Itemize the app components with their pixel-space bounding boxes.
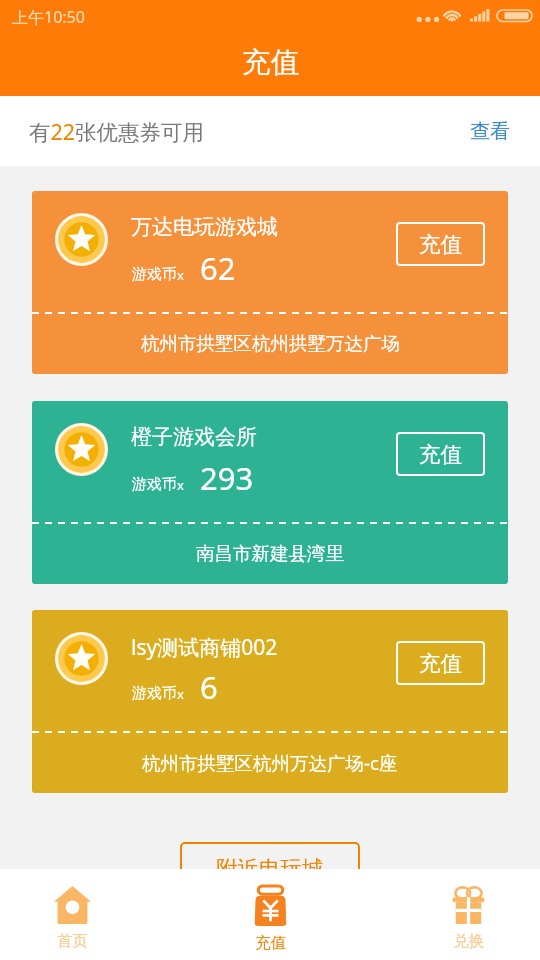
button[interactable]: 橙子游戏会所 — [32, 401, 508, 584]
button[interactable]: 有22张优惠券可用 — [0, 96, 540, 166]
staticText: lsy测试商铺002 — [131, 633, 278, 662]
staticText: 62 — [200, 247, 236, 289]
button[interactable]: Recharge — [225, 869, 315, 960]
staticText: 充值 — [242, 45, 299, 81]
staticText: 首页 — [57, 931, 88, 951]
staticText: 游戏币 — [132, 684, 177, 703]
staticText: x — [177, 266, 184, 284]
staticText: 南昌市新建县湾里 — [196, 542, 344, 565]
staticText: x — [177, 476, 184, 494]
button[interactable]: 充值 — [396, 641, 485, 685]
staticText: 充值 — [419, 650, 462, 677]
staticText: 充值 — [255, 933, 286, 953]
staticText: 上午10:50 — [12, 6, 85, 28]
other: Recharge — [254, 886, 287, 926]
other: Home — [54, 886, 91, 924]
staticText: 有22张优惠券可用 — [29, 117, 205, 146]
staticText: x — [177, 685, 184, 703]
button[interactable]: 充值 — [396, 432, 485, 476]
staticText: 兑换 — [453, 931, 484, 951]
staticText: 查看 — [470, 119, 510, 144]
staticText: 充值 — [419, 441, 462, 468]
staticText: 万达电玩游戏城 — [131, 214, 278, 240]
staticText: 橙子游戏会所 — [131, 424, 257, 450]
button[interactable]: Exchange — [423, 869, 513, 960]
staticText: 附近电玩城 — [216, 855, 324, 882]
button[interactable]: 充值 — [396, 222, 485, 266]
button[interactable]: 万达电玩游戏城 — [32, 191, 508, 374]
other: Exchange — [450, 886, 487, 924]
button[interactable]: Home — [27, 869, 117, 960]
staticText: 293 — [200, 457, 254, 499]
button[interactable]: lsy测试商铺002 — [32, 610, 508, 793]
button[interactable]: 查看 — [470, 119, 510, 144]
staticText: 游戏币 — [132, 475, 177, 494]
staticText: 杭州市拱墅区杭州万达广场-c座 — [142, 750, 398, 775]
staticText: 充值 — [419, 231, 462, 258]
staticText: 游戏币 — [132, 265, 177, 284]
staticText: 杭州市拱墅区杭州拱墅万达广场 — [141, 332, 400, 355]
staticText: 6 — [200, 666, 218, 708]
button[interactable]: 附近电玩城 — [180, 842, 360, 894]
